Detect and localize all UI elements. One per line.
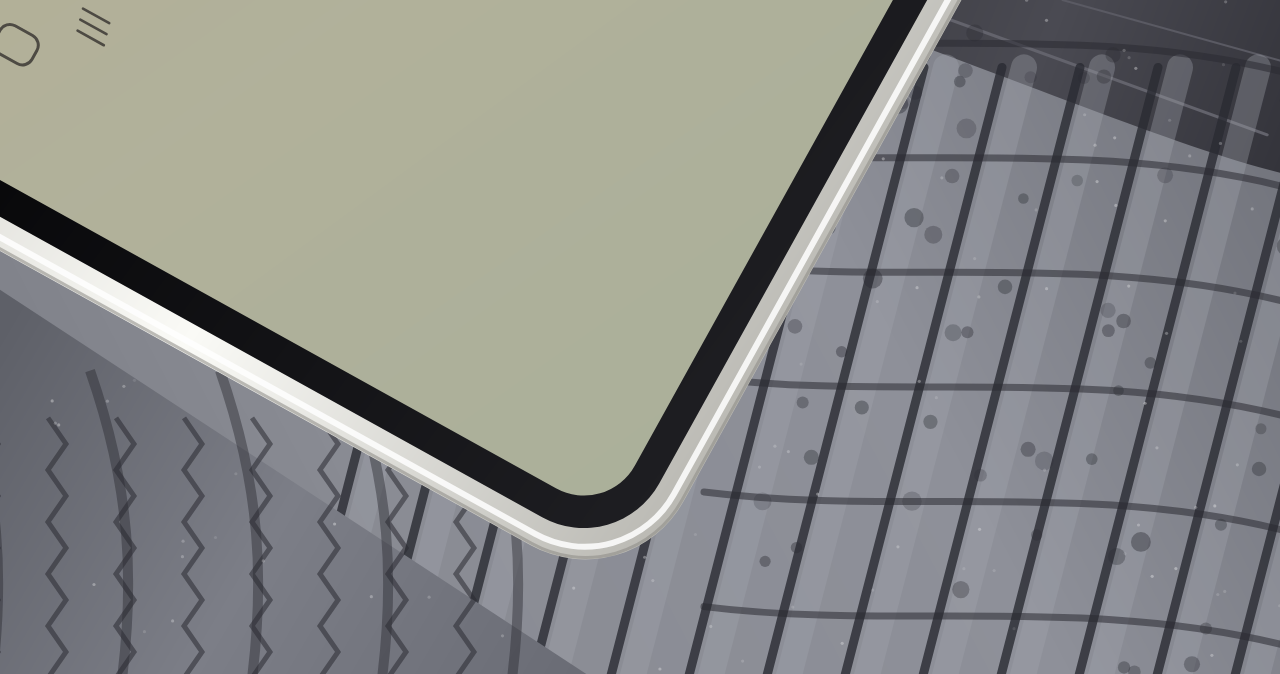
button[interactable]: Photo of a phone showing a scam SMS mess… — [0, 0, 1280, 674]
